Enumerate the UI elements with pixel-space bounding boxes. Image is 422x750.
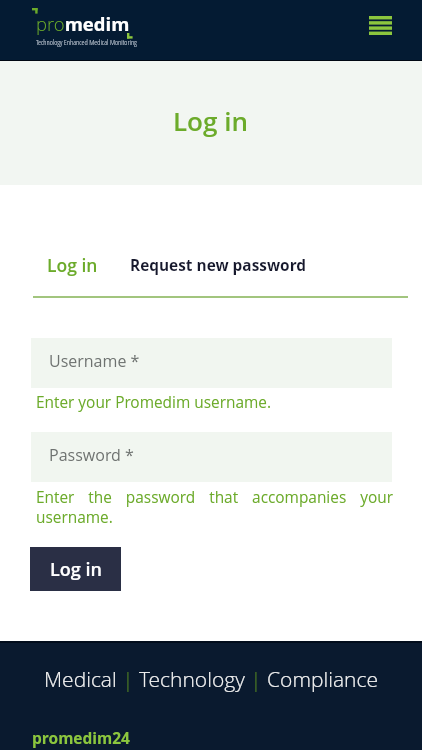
staticText: Technology Enhanced Medical Monitoring bbox=[36, 37, 151, 47]
button[interactable]: Log in bbox=[30, 547, 121, 591]
staticText: Request new password bbox=[130, 255, 307, 276]
staticText: Enter your Promedim username. bbox=[36, 392, 272, 413]
staticText: promedim24 bbox=[32, 727, 130, 748]
staticText: promedim bbox=[36, 11, 151, 36]
button[interactable]: Log in bbox=[0, 250, 115, 291]
staticText: Log in bbox=[50, 557, 102, 582]
button[interactable]: Username * bbox=[31, 338, 392, 388]
staticText: Username * bbox=[49, 350, 140, 372]
staticText: Log in bbox=[47, 253, 98, 277]
staticText: Enter the password that accompanies your… bbox=[36, 487, 393, 528]
button[interactable]: Menu bbox=[365, 12, 396, 39]
staticText: Log in bbox=[173, 103, 248, 138]
staticText: Medical | Technology | Compliance bbox=[44, 665, 378, 694]
button[interactable]: Request new password bbox=[115, 250, 331, 288]
button[interactable]: Password * bbox=[31, 432, 392, 482]
staticText: Password * bbox=[49, 444, 134, 466]
